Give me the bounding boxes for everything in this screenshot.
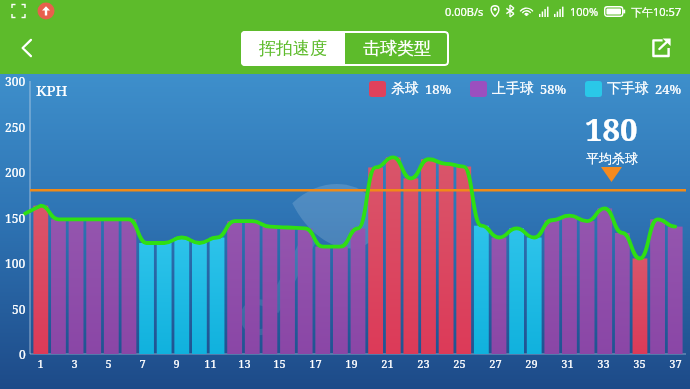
staticText: 58% — [540, 80, 567, 98]
staticText: 25 — [453, 356, 466, 371]
staticText: 35 — [633, 356, 646, 371]
staticText: 180 — [585, 108, 638, 150]
staticText: 17 — [309, 356, 322, 371]
staticText: 23 — [417, 356, 430, 371]
staticText: 18% — [425, 80, 452, 98]
staticText: 300 — [5, 73, 26, 89]
staticText: 15 — [273, 356, 286, 371]
staticText: 下午10:57 — [631, 4, 682, 19]
staticText: 33 — [597, 356, 610, 371]
staticText: 100 — [5, 255, 26, 271]
staticText: 1 — [37, 356, 44, 371]
staticText: 200 — [5, 164, 26, 180]
staticText: 150 — [5, 210, 26, 226]
staticText: KPH — [36, 80, 68, 100]
button[interactable]: Share — [640, 27, 682, 69]
staticText: 0 — [19, 346, 26, 362]
staticText: 24% — [655, 80, 682, 98]
staticText: 下手球 — [607, 80, 649, 98]
staticText: 100% — [570, 4, 599, 19]
staticText: 27 — [489, 356, 502, 371]
button[interactable]: 挥拍速度 — [241, 31, 345, 66]
staticText: 上手球 — [492, 80, 534, 98]
staticText: 3 — [71, 356, 78, 371]
staticText: 7 — [139, 356, 146, 371]
staticText: 击球类型 — [363, 38, 431, 59]
staticText: 11 — [204, 356, 217, 371]
staticText: 19 — [345, 356, 358, 371]
staticText: 挥拍速度 — [259, 38, 327, 59]
staticText: 9 — [173, 356, 180, 371]
staticText: 31 — [561, 356, 574, 371]
staticText: 50 — [12, 301, 26, 317]
staticText: 平均杀球 — [586, 150, 638, 166]
staticText: 0.00B/s — [445, 4, 484, 19]
staticText: 5 — [105, 356, 112, 371]
button[interactable]: Back — [6, 27, 48, 69]
staticText: 29 — [525, 356, 538, 371]
button[interactable]: 击球类型 — [345, 31, 449, 66]
staticText: 21 — [381, 356, 394, 371]
staticText: 250 — [5, 119, 26, 135]
staticText: 37 — [669, 356, 682, 371]
staticText: 13 — [238, 356, 251, 371]
staticText: 杀球 — [391, 80, 419, 98]
